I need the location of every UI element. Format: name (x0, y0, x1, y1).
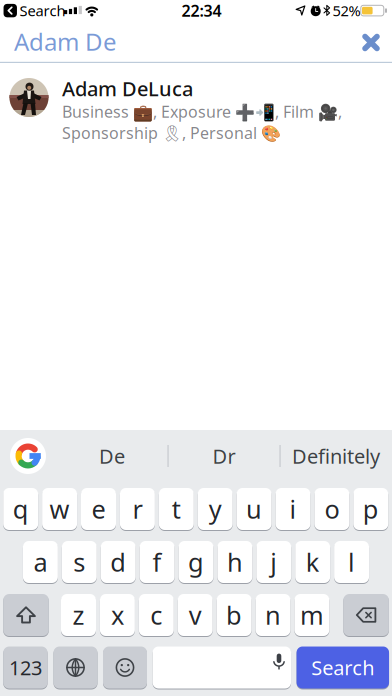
staticText: Adam De (14, 26, 117, 57)
button[interactable]: o (314, 487, 349, 531)
button[interactable]: Search (297, 645, 389, 689)
button[interactable] (343, 593, 389, 637)
button[interactable]: r (120, 487, 155, 531)
button[interactable] (103, 645, 147, 689)
staticText: Search (19, 1, 65, 20)
staticText: h (227, 545, 243, 579)
staticText: d (110, 545, 126, 579)
staticText: 123 (9, 654, 42, 681)
staticText: c (150, 598, 162, 632)
button[interactable]: De (62, 436, 162, 476)
button[interactable]: j (256, 540, 291, 584)
button[interactable] (53, 645, 97, 689)
button[interactable]: a (23, 540, 58, 584)
button[interactable]: Adam DeLuca (0, 63, 392, 145)
staticText: p (363, 492, 379, 526)
button[interactable]: Search (4, 1, 65, 20)
staticText: f (153, 545, 162, 579)
button[interactable]: Definitely (284, 436, 388, 476)
staticText: s (73, 545, 85, 579)
staticText: u (246, 492, 262, 526)
button[interactable] (271, 653, 287, 670)
staticText: l (348, 545, 355, 579)
button[interactable] (153, 645, 291, 689)
button[interactable]: u (237, 487, 272, 531)
button[interactable]: m (294, 593, 329, 637)
button[interactable]: w (42, 487, 77, 531)
button[interactable]: e (81, 487, 116, 531)
staticText: y (209, 492, 222, 526)
button[interactable]: q (3, 487, 38, 531)
staticText: n (265, 598, 281, 632)
staticText: e (91, 492, 105, 526)
button[interactable]: d (101, 540, 136, 584)
button[interactable]: t (159, 487, 194, 531)
staticText: 52% (332, 1, 360, 20)
staticText: Dr (212, 443, 235, 469)
button[interactable]: b (217, 593, 252, 637)
staticText: b (226, 598, 242, 632)
button[interactable]: i (275, 487, 310, 531)
staticText: k (306, 545, 320, 579)
staticText: De (99, 443, 125, 469)
staticText: Adam DeLuca (62, 75, 193, 102)
staticText: o (324, 492, 339, 526)
staticText: 22:34 (181, 0, 221, 21)
button[interactable]: 123 (3, 645, 47, 689)
staticText: z (72, 598, 84, 632)
button[interactable]: g (178, 540, 213, 584)
button[interactable] (10, 438, 46, 474)
staticText: j (270, 545, 277, 579)
button[interactable]: n (255, 593, 290, 637)
button[interactable]: c (139, 593, 174, 637)
staticText: Definitely (292, 443, 380, 469)
button[interactable]: f (140, 540, 175, 584)
button[interactable]: x (100, 593, 135, 637)
staticText: a (33, 545, 47, 579)
staticText: t (172, 492, 181, 526)
staticText: q (13, 492, 29, 526)
staticText: x (111, 598, 124, 632)
staticText: w (50, 492, 70, 526)
button[interactable] (3, 593, 49, 637)
staticText: i (289, 492, 296, 526)
staticText: m (300, 598, 324, 632)
staticText: Search (311, 654, 374, 681)
button[interactable]: v (178, 593, 213, 637)
button[interactable]: h (217, 540, 252, 584)
staticText: r (132, 492, 142, 526)
staticText: g (188, 545, 204, 579)
button[interactable]: y (198, 487, 233, 531)
button[interactable]: k (295, 540, 330, 584)
button[interactable]: s (62, 540, 97, 584)
button[interactable]: p (353, 487, 388, 531)
button[interactable]: z (61, 593, 96, 637)
staticText: v (189, 598, 202, 632)
button[interactable]: l (334, 540, 369, 584)
staticText: Business 💼, Exposure ➕📲, Film 🎥, Sponsor… (62, 101, 342, 143)
button[interactable] (359, 31, 382, 54)
button[interactable]: Dr (174, 436, 274, 476)
